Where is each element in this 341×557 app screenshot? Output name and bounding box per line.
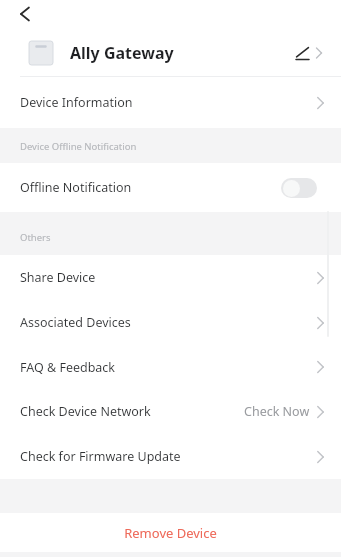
staticText: Device Information [20,94,133,111]
button[interactable]: Offline Notification [0,163,341,212]
staticText: FAQ & Feedback [20,359,116,376]
button[interactable]: Back [12,2,36,26]
staticText: Device Offline Notification [20,140,137,153]
staticText: Share Device [20,269,96,286]
staticText: Remove Device [124,524,217,542]
button[interactable]: Rename device [293,39,327,67]
button[interactable]: Check Device Network [0,389,341,434]
other: Offline Notification toggle [281,178,317,198]
staticText: Offline Notification [20,179,132,196]
button[interactable]: Device Information [0,77,341,128]
staticText: Check Device Network [20,403,151,420]
staticText: Check for Firmware Update [20,448,181,465]
button[interactable]: Check for Firmware Update [0,434,341,479]
staticText: Ally Gateway [70,42,174,64]
button[interactable]: Remove Device [0,513,341,552]
staticText: Associated Devices [20,314,131,331]
button[interactable]: FAQ & Feedback [0,345,341,389]
staticText: Others [20,231,51,244]
staticText: Check Now [244,403,310,420]
button[interactable]: Share Device [0,255,341,300]
button[interactable]: Associated Devices [0,300,341,345]
